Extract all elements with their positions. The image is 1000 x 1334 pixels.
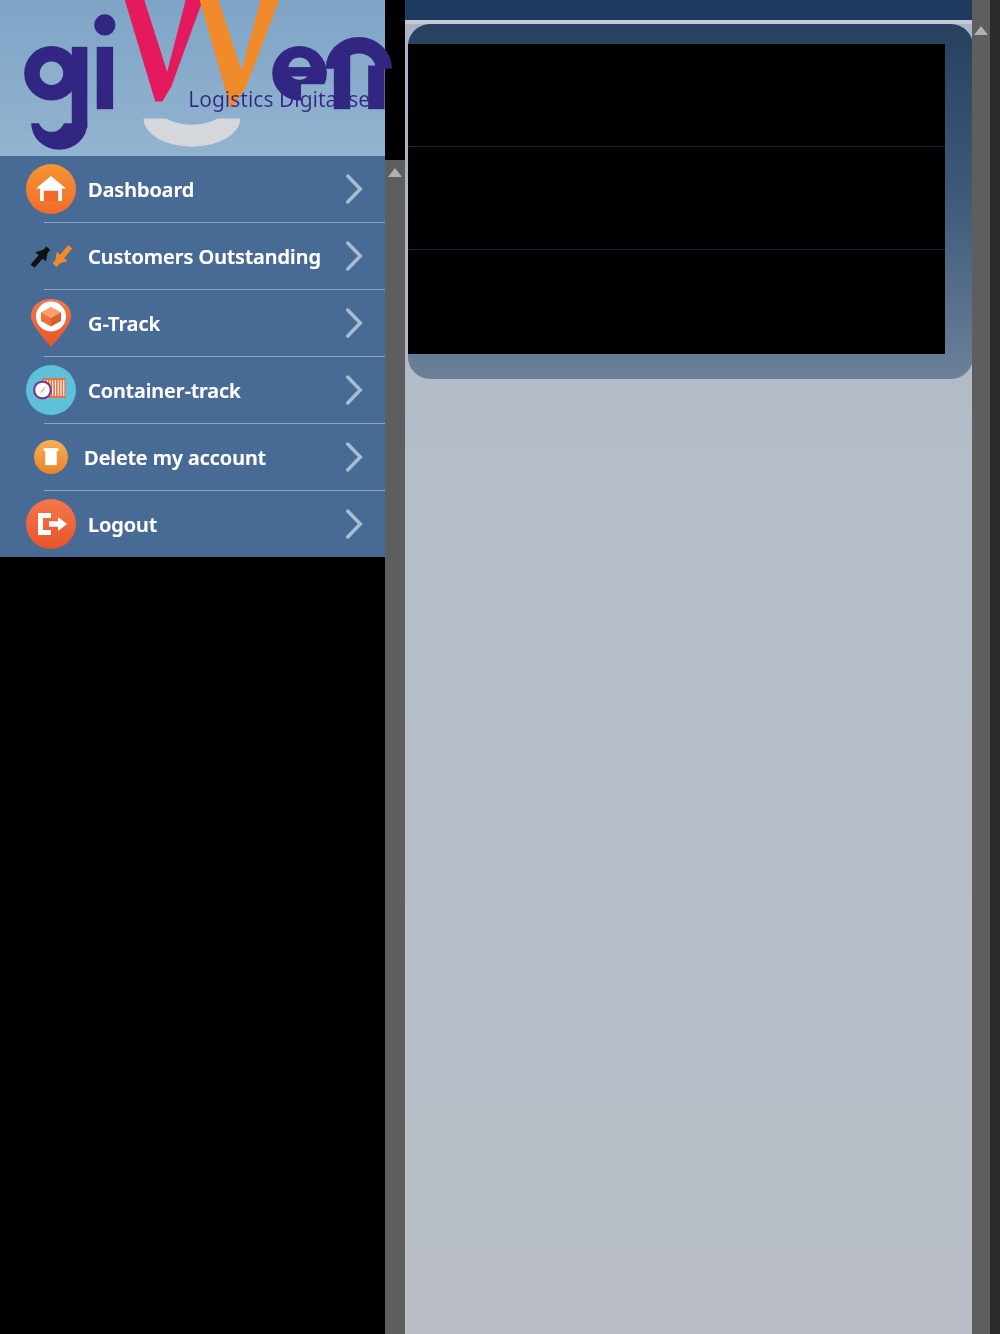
staticText: Delete my account — [84, 444, 266, 471]
staticText: Logout — [88, 511, 157, 538]
button[interactable]: Logout — [0, 491, 385, 557]
button[interactable]: G-Track — [0, 290, 385, 356]
button[interactable]: Dashboard — [0, 156, 385, 222]
staticText: G-Track — [88, 310, 161, 337]
button[interactable]: Delete my account — [0, 424, 385, 490]
button[interactable]: Container-track — [0, 357, 385, 423]
staticText: Dashboard — [88, 176, 195, 203]
staticText: Container-track — [88, 377, 241, 404]
staticText: Logistics Digitalised — [188, 85, 383, 114]
button[interactable]: Customers Outstanding — [0, 223, 385, 289]
staticText: Customers Outstanding — [88, 243, 321, 270]
